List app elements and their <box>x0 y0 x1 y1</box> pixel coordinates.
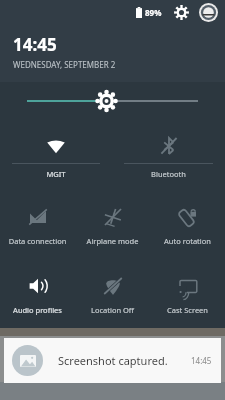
staticText: Airplane mode <box>75 236 150 246</box>
staticText: Audio profiles <box>0 305 75 315</box>
staticText: 14:45 <box>191 355 212 366</box>
staticText: WEDNESDAY, SEPTEMBER 2 <box>13 59 116 70</box>
button[interactable]: Data connection <box>0 188 75 257</box>
staticText: 89% <box>145 7 162 18</box>
staticText: MGIT <box>0 169 112 179</box>
button[interactable]: MGIT <box>0 120 112 188</box>
button[interactable]: Auto rotation <box>150 188 225 257</box>
button[interactable]: User profile <box>199 3 218 22</box>
staticText: Bluetooth <box>112 169 225 179</box>
button[interactable]: Brightness <box>0 82 225 120</box>
staticText: Auto rotation <box>150 236 225 246</box>
staticText: Screenshot captured. <box>58 353 168 368</box>
button[interactable]: Settings <box>172 3 190 21</box>
button[interactable]: Airplane mode <box>75 188 150 257</box>
staticText: Data connection <box>0 236 75 246</box>
button[interactable]: Location Off <box>75 257 150 326</box>
staticText: Location Off <box>75 305 150 315</box>
button[interactable]: Cast Screen <box>150 257 225 326</box>
button[interactable]: Screenshot captured. <box>4 338 221 383</box>
staticText: 14:45 <box>13 33 57 56</box>
staticText: Cast Screen <box>150 305 225 315</box>
button[interactable]: Audio profiles <box>0 257 75 326</box>
button[interactable]: Bluetooth <box>112 120 225 188</box>
